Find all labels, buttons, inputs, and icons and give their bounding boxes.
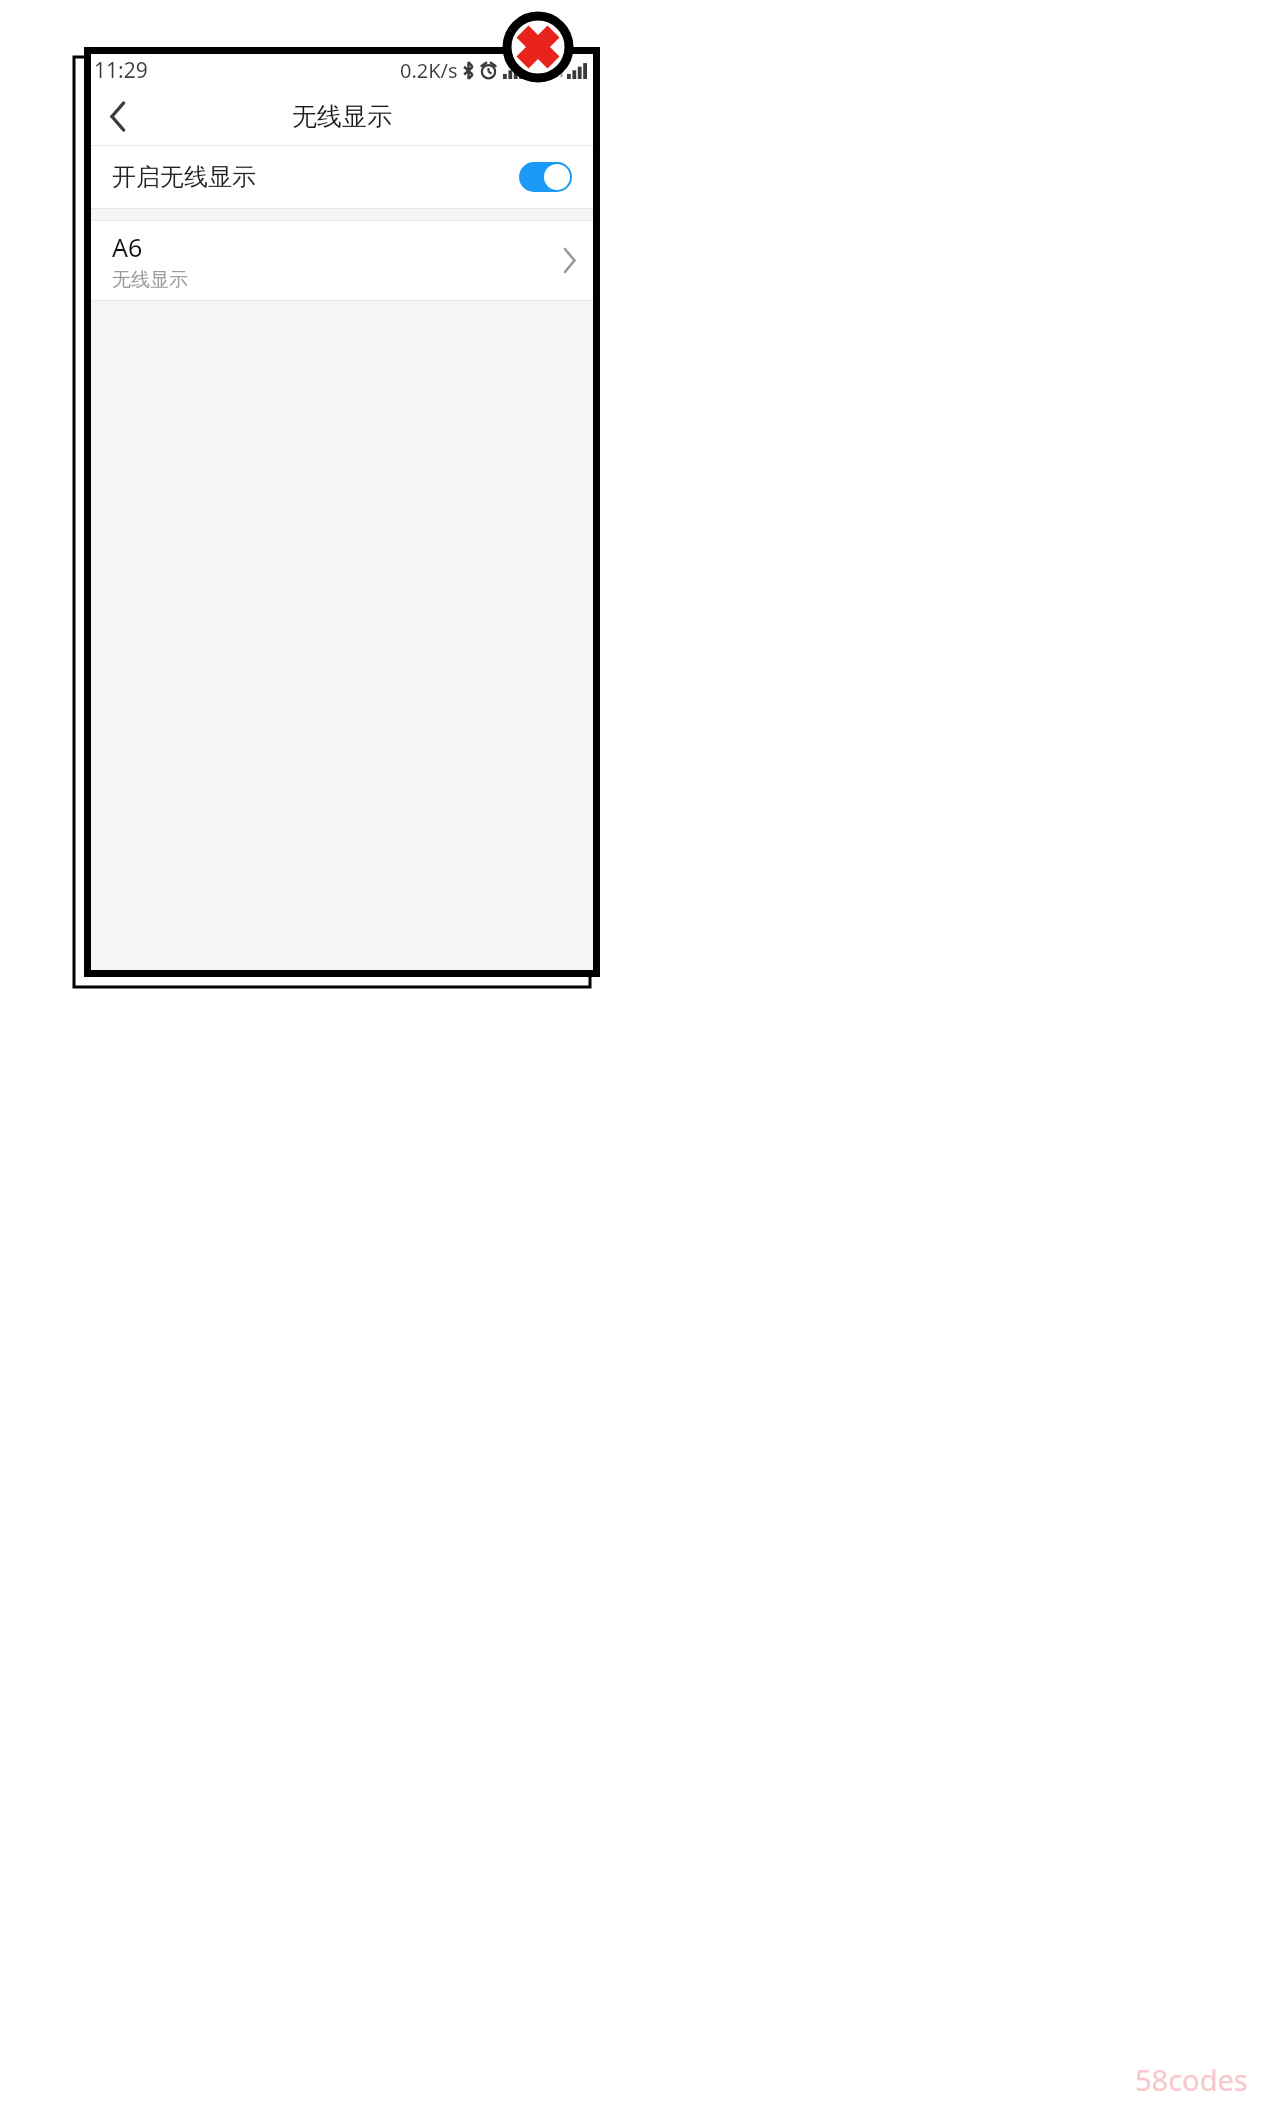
staticText: 11:29 [94,56,148,85]
staticText: 0.2K/s [400,57,458,84]
staticText: 无线显示 [292,101,392,132]
staticText: 4G [526,57,552,84]
button[interactable]: A6 [91,221,593,300]
button[interactable]: Close [500,9,576,85]
staticText: A6 [112,230,143,264]
staticText: 开启无线显示 [112,162,256,192]
staticText: 无线显示 [112,268,188,292]
staticText: 58codes [1135,2060,1248,2099]
button[interactable]: Back [91,89,145,143]
button[interactable]: 开启无线显示 [91,146,593,208]
